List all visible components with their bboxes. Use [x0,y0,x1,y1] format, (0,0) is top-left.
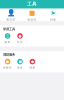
button[interactable]: ■ [14,59,26,69]
staticText: ● [6,60,9,64]
button[interactable]: 👤 [0,9,21,21]
staticText: ■ [18,60,21,64]
staticText: ☰ [6,34,9,38]
staticText: 收款码 [27,18,36,21]
staticText: ■ [29,9,35,16]
button[interactable]: ➤ [43,9,64,21]
staticText: 保险 [29,66,35,69]
staticText: 常用工具 [3,27,15,31]
staticText: ● [31,60,34,64]
button[interactable]: ● [26,59,39,69]
staticText: ● [18,34,21,38]
staticText: 👤 [7,9,15,16]
staticText: 转账 [50,18,56,21]
staticText: 红包 [17,40,23,44]
staticText: ➤ [50,9,56,16]
staticText: 理财服务 [3,53,15,57]
button[interactable]: ● [14,33,26,44]
staticText: 余额宝 [3,66,12,69]
staticText: 基金 [17,66,23,69]
button[interactable]: ■ [21,9,43,21]
button[interactable]: ● [1,59,14,69]
staticText: 通讯录 [6,18,15,21]
staticText: 账单 [5,40,11,44]
button[interactable]: ☰ [1,33,14,44]
staticText: 工具 [27,1,37,7]
